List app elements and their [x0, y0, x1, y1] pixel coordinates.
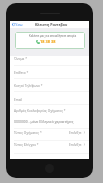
button[interactable]: Καλέστε μας για οποιαδήποτε απορία	[15, 32, 85, 49]
staticText: 18 38 38	[40, 39, 56, 44]
staticText: Όνομα *	[14, 57, 27, 61]
button[interactable]	[10, 52, 89, 65]
button[interactable]	[10, 65, 89, 78]
staticText: Αριθμός Κυκλοφορίας Οχήματος *	[14, 109, 66, 113]
button[interactable]	[10, 128, 89, 140]
staticText: Επιλέξτε	[69, 143, 82, 147]
button[interactable]	[10, 91, 89, 104]
staticText: Επιλέξτε	[69, 131, 82, 135]
staticText: Τύπος Οχήματος *	[14, 131, 42, 135]
button[interactable]	[10, 78, 89, 91]
staticText: XXX0000 - μόνο Ελληνικά χαρακτήρες	[14, 119, 74, 124]
button[interactable]	[10, 140, 89, 152]
staticText: Πίσω	[14, 22, 23, 27]
staticText: Επίθετο *	[14, 71, 29, 75]
staticText: Κλειστη Ραντεβου	[35, 22, 68, 27]
staticText: Email	[14, 98, 23, 102]
button[interactable]: Πίσω	[10, 22, 25, 27]
staticText: Καλέστε μας για οποιαδήποτε απορία	[29, 34, 77, 38]
staticText: Τύπος Ελέγχου *	[14, 143, 39, 147]
button[interactable]	[10, 104, 89, 128]
staticText: Κινητό Τηλέφωνο *	[14, 84, 43, 88]
